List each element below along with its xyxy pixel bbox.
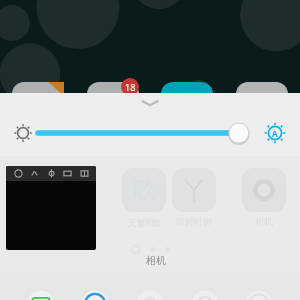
button[interactable]: 相机: [238, 168, 290, 227]
button[interactable]: 闹钟时钟: [168, 168, 220, 227]
button[interactable]: Brightness slider: [36, 118, 260, 148]
button[interactable]: 天籁K歌: [118, 168, 170, 228]
staticText: 歌: [133, 176, 155, 204]
button[interactable]: Camera widget: [6, 166, 300, 267]
staticText: 相机: [146, 254, 166, 267]
button[interactable]: Automatic brightness: [260, 118, 290, 148]
staticText: 闹钟时钟: [168, 216, 220, 227]
button[interactable]: Messages: [73, 272, 117, 300]
button[interactable]: Collapse panel: [139, 98, 161, 108]
staticText: A: [272, 128, 278, 139]
button[interactable]: Minimum brightness: [10, 120, 36, 146]
button[interactable]: Phone: [19, 272, 63, 300]
staticText: 18: [125, 81, 136, 93]
staticText: 天籁K歌: [118, 216, 170, 228]
staticText: 相机: [238, 216, 290, 227]
